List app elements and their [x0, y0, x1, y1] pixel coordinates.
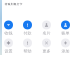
- button[interactable]: 帮助: [18, 38, 36, 53]
- staticText: 付款: [23, 31, 31, 35]
- staticText: 更多: [42, 49, 50, 53]
- staticText: 收钱: [4, 31, 12, 35]
- staticText: 设置: [4, 49, 12, 53]
- button[interactable]: 设置: [0, 38, 17, 53]
- button[interactable]: 收钱: [0, 20, 17, 35]
- staticText: 转账到银行卡: [5, 3, 23, 6]
- button[interactable]: 更多: [37, 38, 55, 53]
- button[interactable]: 账单: [56, 20, 74, 35]
- button[interactable]: 名片: [37, 20, 55, 35]
- staticText: 添加: [61, 49, 69, 53]
- button[interactable]: 付款: [18, 20, 36, 35]
- staticText: 账单: [61, 31, 69, 35]
- staticText: 帮助: [23, 49, 31, 53]
- staticText: 名片: [42, 31, 50, 35]
- button[interactable]: 转账到银行卡: [5, 3, 23, 6]
- button[interactable]: 添加: [56, 38, 74, 53]
